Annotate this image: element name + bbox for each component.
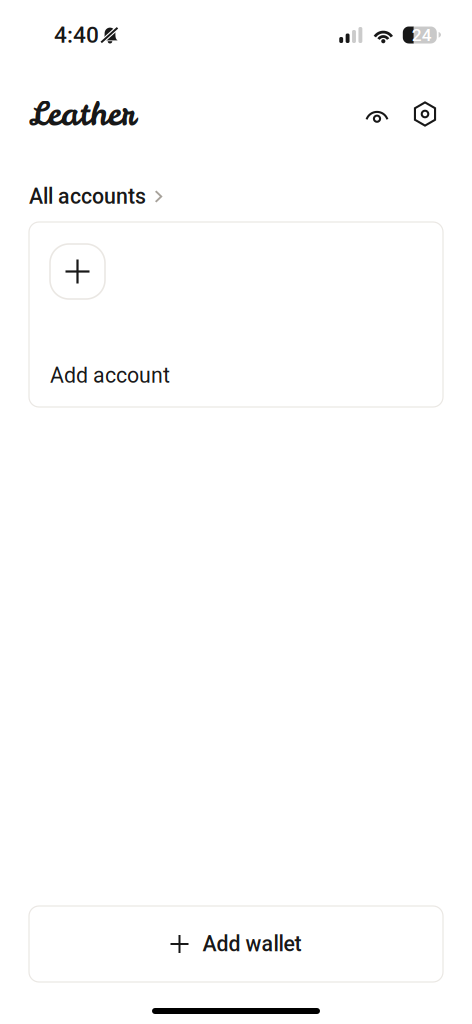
button[interactable]: Hide balance <box>359 96 395 132</box>
staticText: 24 <box>412 25 432 45</box>
button[interactable]: Add account <box>29 222 443 407</box>
staticText: Add wallet <box>202 931 301 956</box>
staticText: Leather <box>29 92 136 135</box>
staticText: All accounts <box>29 184 146 209</box>
staticText: Add account <box>50 363 170 388</box>
button[interactable]: Add wallet <box>29 906 443 982</box>
button[interactable]: Settings <box>407 96 443 132</box>
button[interactable]: All accounts <box>0 171 472 222</box>
staticText: 4:40 <box>54 22 99 48</box>
